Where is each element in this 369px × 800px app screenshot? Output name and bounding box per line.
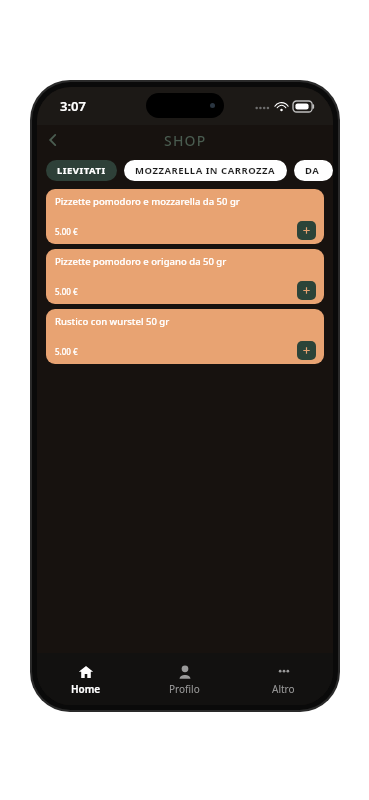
staticText: Profilo [169,682,200,696]
button[interactable]: Rustico con wurstel 50 gr [46,309,324,364]
staticText: SHOP [164,131,207,150]
staticText: MOZZARELLA IN CARROZZA [135,164,276,177]
button[interactable]: Pizzette pomodoro e origano da 50 gr [46,249,324,304]
button[interactable]: DA FRIGGERE [294,160,333,181]
staticText: LIEVITATI [57,164,106,177]
staticText: Pizzette pomodoro e origano da 50 gr [55,255,227,268]
button[interactable]: Profilo [135,653,234,705]
staticText: 5.00 € [55,346,78,357]
button[interactable]: Altro [234,653,333,705]
staticText: Altro [272,682,295,696]
staticText: Home [71,682,101,696]
button[interactable]: Pizzette pomodoro e mozzarella da 50 gr [46,189,324,244]
staticText: 5.00 € [55,226,78,237]
staticText: DA FRIGGERE [305,164,322,177]
button[interactable]: Home [37,653,135,705]
button[interactable]: Add to cart [297,341,316,360]
button[interactable]: Add to cart [297,221,316,240]
button[interactable]: Add to cart [297,281,316,300]
staticText: 3:07 [60,97,86,115]
staticText: Pizzette pomodoro e mozzarella da 50 gr [55,195,240,208]
staticText: 5.00 € [55,286,78,297]
button[interactable]: Back [37,125,69,155]
button[interactable]: LIEVITATI [46,160,117,181]
button[interactable]: MOZZARELLA IN CARROZZA [124,160,287,181]
staticText: Rustico con wurstel 50 gr [55,315,170,328]
